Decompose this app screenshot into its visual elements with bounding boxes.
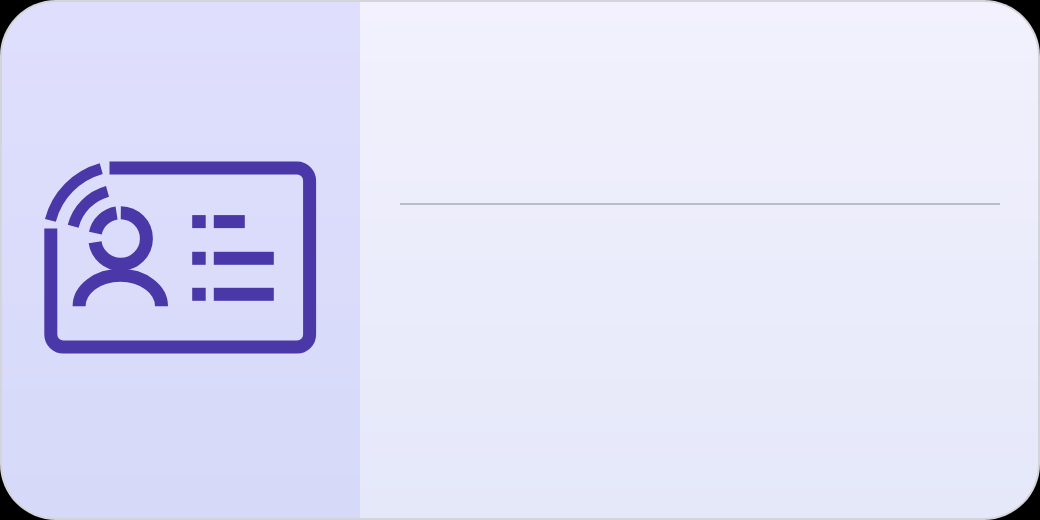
button[interactable]: Contactless ID badge <box>2 2 360 518</box>
